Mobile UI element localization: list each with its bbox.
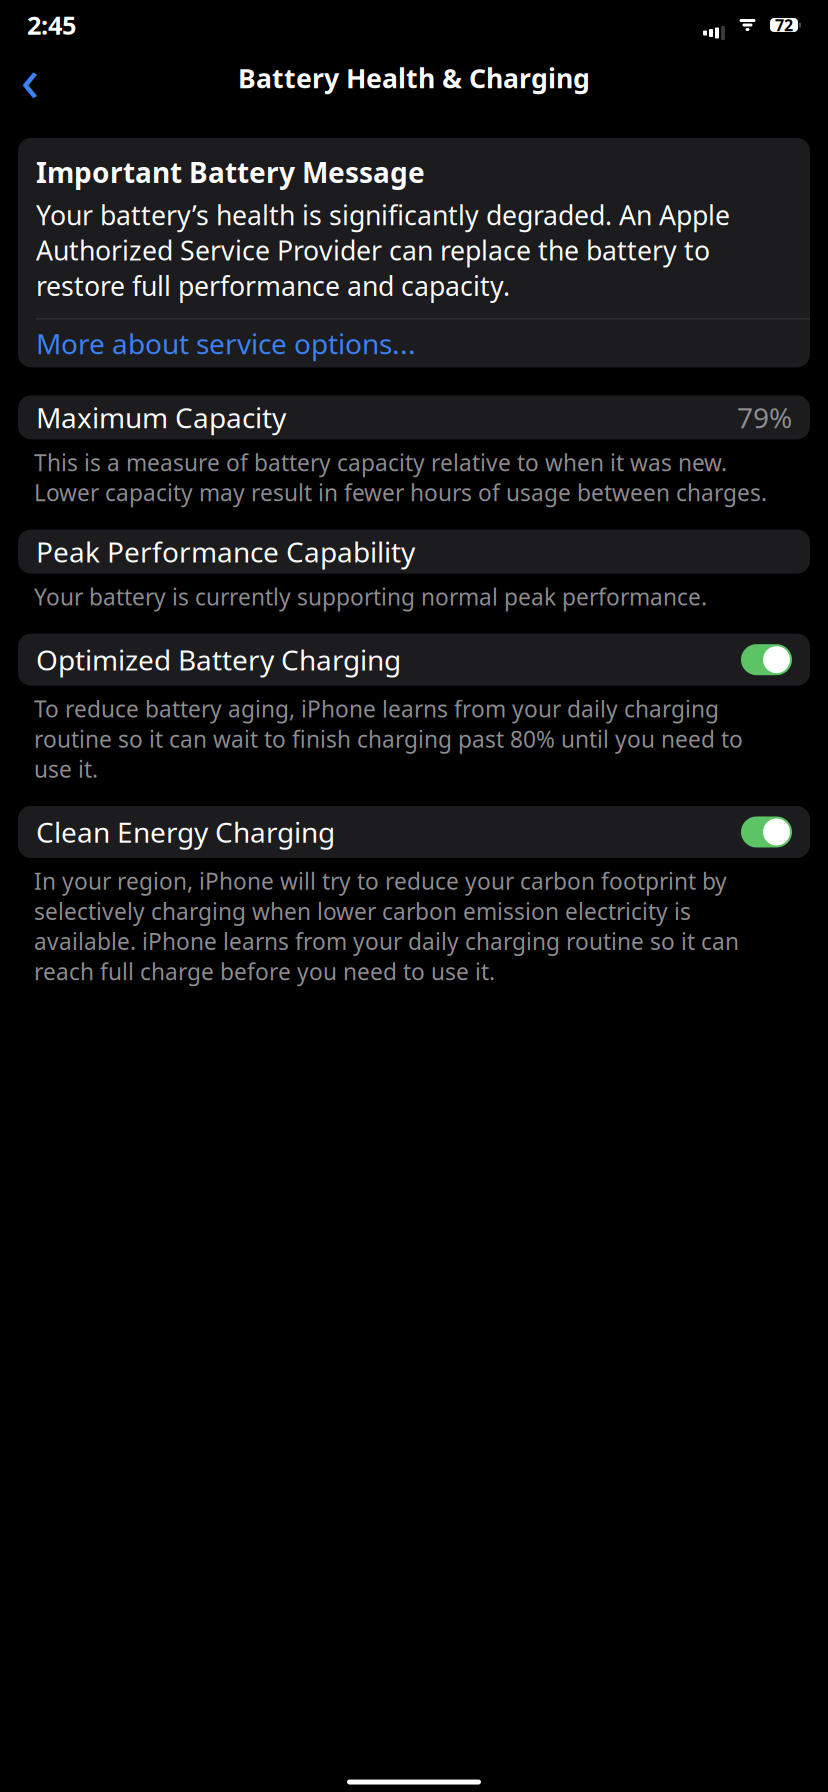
button[interactable]: Clean Energy Charging	[18, 806, 810, 858]
staticText: Your battery is currently supporting nor…	[34, 582, 707, 612]
button[interactable]: More about service options...	[18, 319, 810, 367]
button[interactable]: Back	[8, 56, 52, 100]
staticText: Peak Performance Capability	[36, 533, 415, 570]
staticText: ‹	[20, 37, 39, 119]
staticText: Battery Health & Charging	[238, 60, 590, 96]
button[interactable]: Optimized Battery Charging	[18, 634, 810, 686]
staticText: Your battery’s health is significantly d…	[36, 197, 730, 303]
staticText: 72	[775, 14, 793, 36]
staticText: To reduce battery aging, iPhone learns f…	[34, 694, 743, 784]
staticText: Clean Energy Charging	[36, 813, 335, 851]
staticText: More about service options...	[36, 325, 416, 362]
button[interactable]: Peak Performance Capability	[18, 530, 810, 574]
staticText: 79%	[737, 399, 792, 436]
staticText: This is a measure of battery capacity re…	[34, 447, 767, 508]
staticText: Important Battery Message	[36, 153, 425, 191]
button[interactable]: Maximum Capacity	[18, 395, 810, 439]
staticText: 2:45	[27, 8, 76, 42]
staticText: In your region, iPhone will try to reduc…	[34, 866, 739, 986]
staticText: Optimized Battery Charging	[36, 641, 401, 678]
staticText: Maximum Capacity	[36, 399, 286, 436]
